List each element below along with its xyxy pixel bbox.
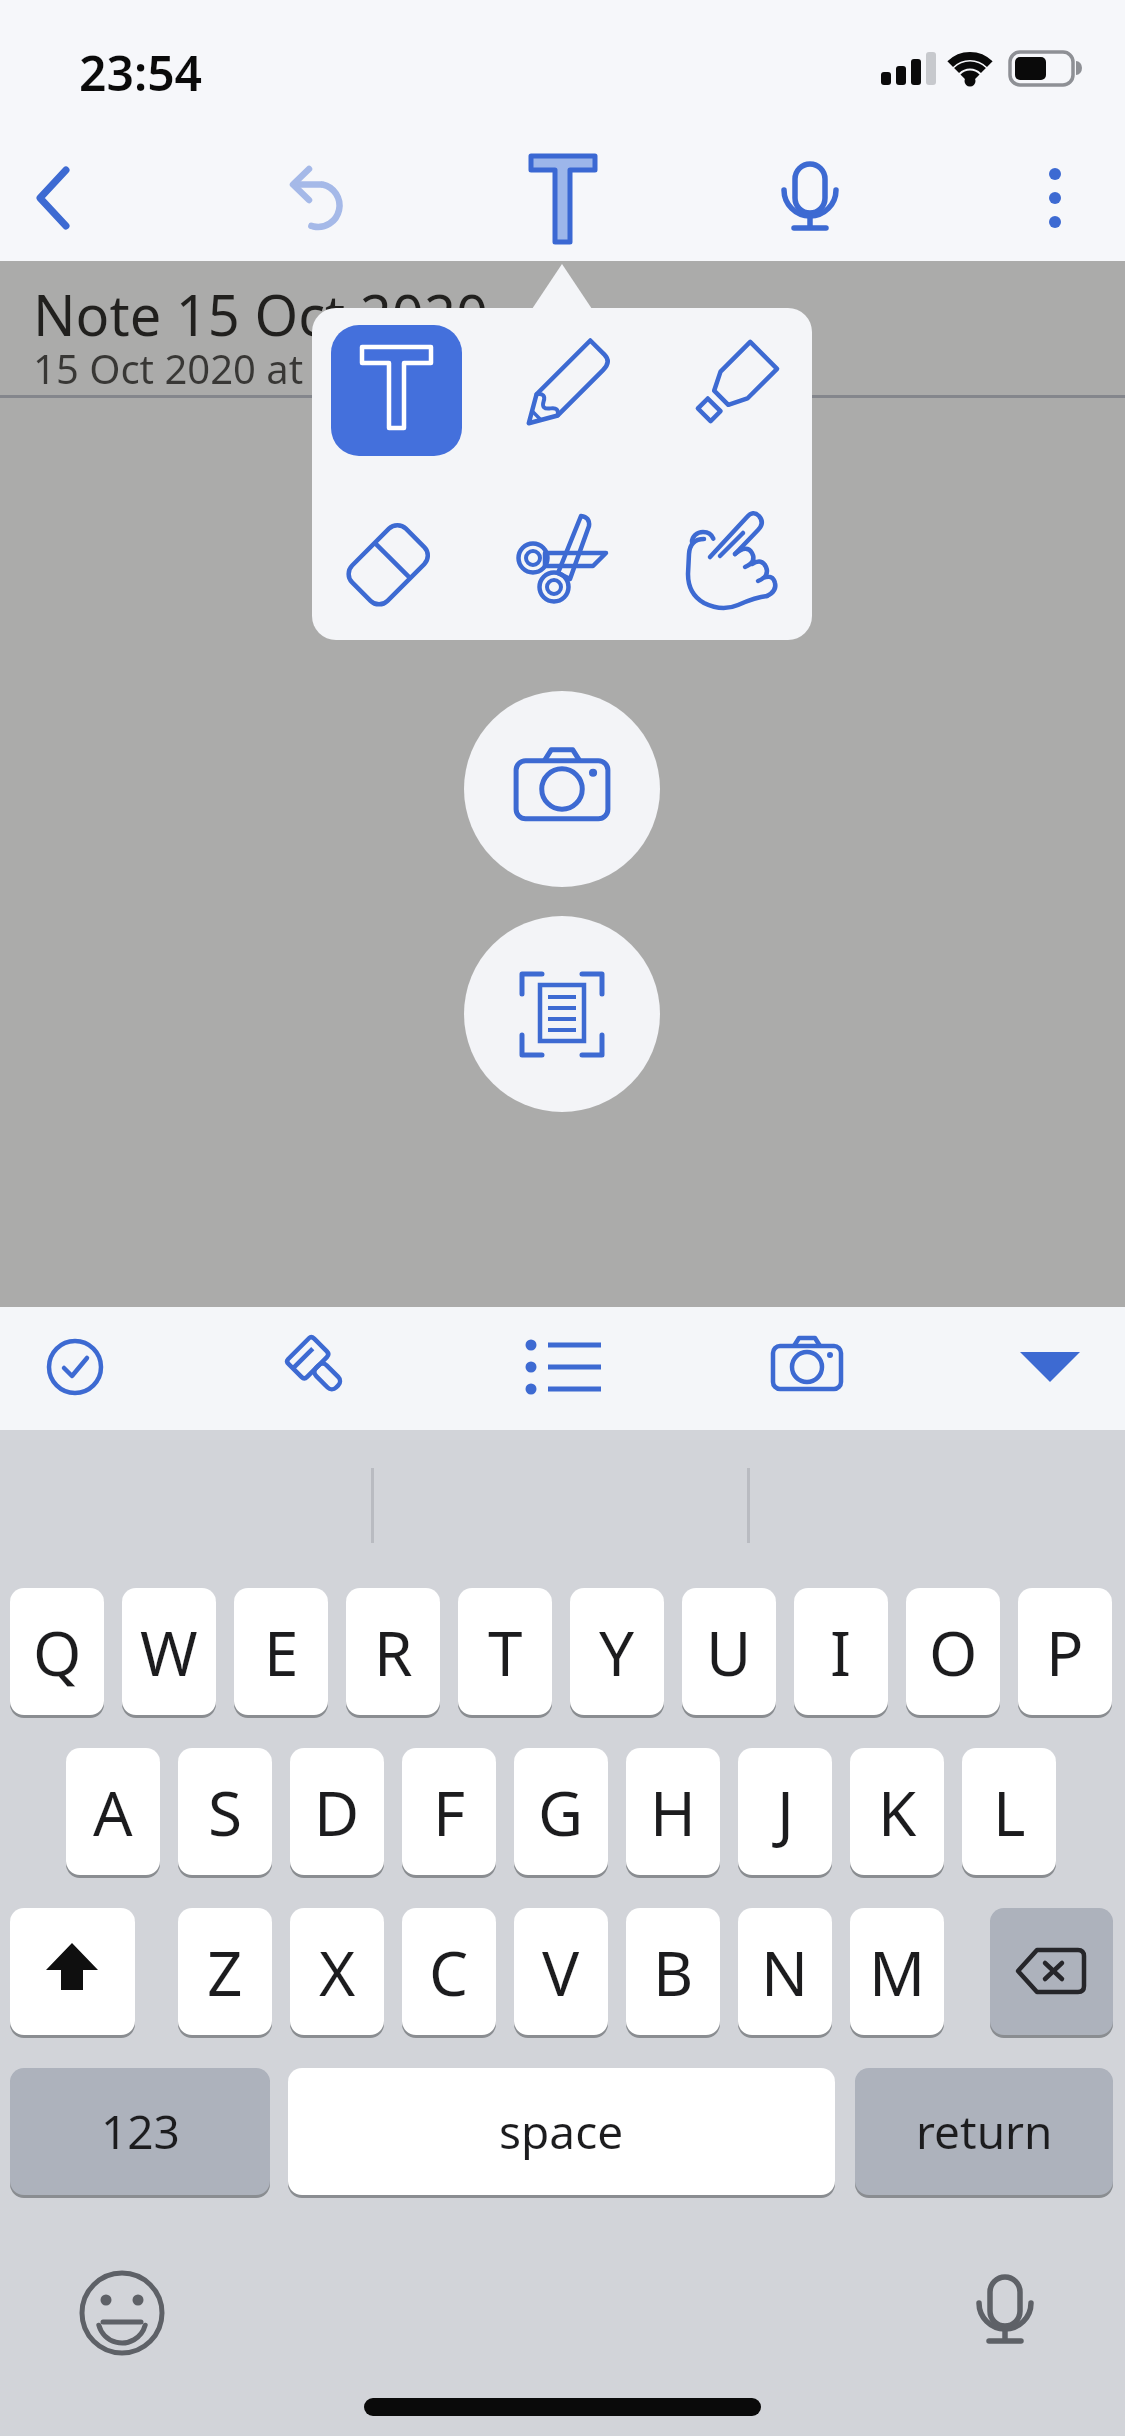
staticText: Y [599,1610,635,1694]
button[interactable] [20,155,100,245]
button[interactable] [990,1908,1113,2035]
button[interactable] [497,492,628,623]
button[interactable] [1020,150,1090,240]
button[interactable]: J [738,1748,832,1875]
button[interactable] [331,325,462,456]
staticText: R [374,1610,413,1694]
staticText: B [653,1930,694,2014]
button[interactable] [523,1327,603,1407]
button[interactable]: B [626,1908,720,2035]
staticText: U [706,1610,752,1694]
button[interactable]: E [234,1588,328,1715]
button[interactable]: A [66,1748,160,1875]
button[interactable]: N [738,1908,832,2035]
button[interactable] [277,1327,357,1407]
staticText: 23:54 [79,40,203,105]
staticText: Z [207,1930,243,2014]
button[interactable] [664,325,795,456]
button[interactable] [1010,1327,1090,1407]
staticText: N [761,1930,809,2014]
staticText: J [777,1770,794,1854]
button[interactable] [955,2255,1055,2355]
button[interactable] [767,1327,847,1407]
button[interactable] [464,691,660,887]
staticText: return [916,2100,1053,2163]
button[interactable]: T [458,1588,552,1715]
button[interactable]: I [794,1588,888,1715]
button[interactable]: space [288,2068,835,2195]
staticText: V [542,1930,580,2014]
button[interactable] [331,492,462,623]
button[interactable]: Y [570,1588,664,1715]
staticText: space [499,2100,624,2163]
button[interactable]: M [850,1908,944,2035]
staticText: 123 [101,2100,180,2163]
button[interactable] [664,492,795,623]
staticText: W [140,1610,198,1694]
button[interactable]: Q [10,1588,104,1715]
button[interactable]: Z [178,1908,272,2035]
button[interactable] [464,916,660,1112]
button[interactable]: X [290,1908,384,2035]
button[interactable]: return [855,2068,1113,2195]
staticText: G [538,1770,584,1854]
button[interactable]: V [514,1908,608,2035]
staticText: Q [33,1610,82,1694]
staticText: X [319,1930,356,2014]
button[interactable] [497,325,628,456]
staticText: T [488,1610,523,1694]
staticText: S [208,1770,243,1854]
button[interactable]: F [402,1748,496,1875]
staticText: M [869,1930,926,2014]
button[interactable]: P [1018,1588,1112,1715]
button[interactable] [285,155,365,245]
button[interactable]: K [850,1748,944,1875]
staticText: 15 Oct 2020 at 23:53 [33,341,416,395]
staticText: A [93,1770,133,1854]
button[interactable]: 123 [10,2068,270,2195]
button[interactable]: C [402,1908,496,2035]
staticText: H [650,1770,696,1854]
button[interactable] [520,145,610,250]
staticText: C [429,1930,469,2014]
staticText: O [929,1610,978,1694]
button[interactable]: O [906,1588,1000,1715]
button[interactable]: R [346,1588,440,1715]
staticText: P [1046,1610,1084,1694]
staticText: L [993,1770,1026,1854]
button[interactable] [770,150,850,245]
button[interactable]: D [290,1748,384,1875]
button[interactable]: W [122,1588,216,1715]
button[interactable]: G [514,1748,608,1875]
button[interactable] [72,2263,172,2363]
staticText: K [878,1770,917,1854]
button[interactable]: L [962,1748,1056,1875]
staticText: E [264,1610,299,1694]
button[interactable] [10,1908,135,2035]
button[interactable]: H [626,1748,720,1875]
staticText: F [433,1770,466,1854]
staticText: D [314,1770,360,1854]
button[interactable]: S [178,1748,272,1875]
staticText: Note 15 Oct 2020 [33,276,488,352]
staticText: I [830,1610,852,1694]
button[interactable]: U [682,1588,776,1715]
button[interactable] [35,1327,115,1407]
